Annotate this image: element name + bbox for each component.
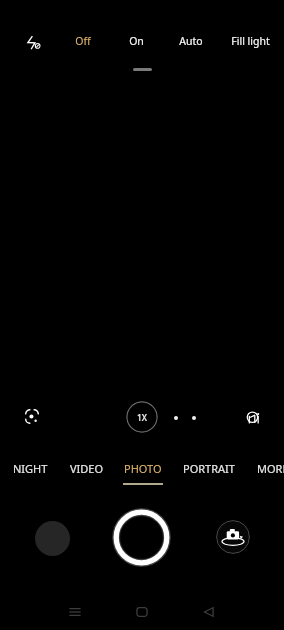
button[interactable]: Recents: [63, 600, 87, 624]
staticText: 1X: [137, 412, 148, 424]
button[interactable]: AI scene detection: [16, 400, 48, 432]
button[interactable]: On: [116, 29, 156, 53]
staticText: PHOTO: [124, 461, 162, 476]
staticText: PORTRAIT: [183, 461, 235, 476]
button[interactable]: NIGHT: [8, 461, 52, 487]
staticText: Fill light: [231, 34, 270, 48]
button[interactable]: 1X: [126, 401, 158, 433]
button[interactable]: Gallery: [35, 521, 70, 556]
button[interactable]: VIDEO: [64, 461, 109, 487]
button[interactable]: Back: [197, 600, 221, 624]
staticText: Auto: [179, 34, 203, 48]
button[interactable]: MORE: [250, 461, 284, 487]
button[interactable]: PORTRAIT: [176, 461, 241, 487]
button[interactable]: Off: [62, 29, 104, 53]
staticText: MORE: [257, 461, 284, 476]
staticText: NIGHT: [13, 461, 48, 476]
button[interactable]: Switch camera: [216, 520, 250, 554]
button[interactable]: PHOTO: [120, 461, 166, 487]
button[interactable]: Zoom 2x: [168, 410, 184, 426]
button[interactable]: Fill light: [222, 29, 278, 53]
button[interactable]: Zoom 5x: [186, 410, 202, 426]
button[interactable]: Flash off: [15, 29, 51, 55]
staticText: VIDEO: [70, 461, 104, 476]
button[interactable]: Take photo: [112, 508, 171, 567]
button[interactable]: Home: [130, 600, 154, 624]
staticText: On: [129, 34, 144, 48]
staticText: Off: [75, 34, 91, 48]
button[interactable]: Beauty filter: [237, 401, 269, 433]
button[interactable]: Auto: [168, 29, 214, 53]
